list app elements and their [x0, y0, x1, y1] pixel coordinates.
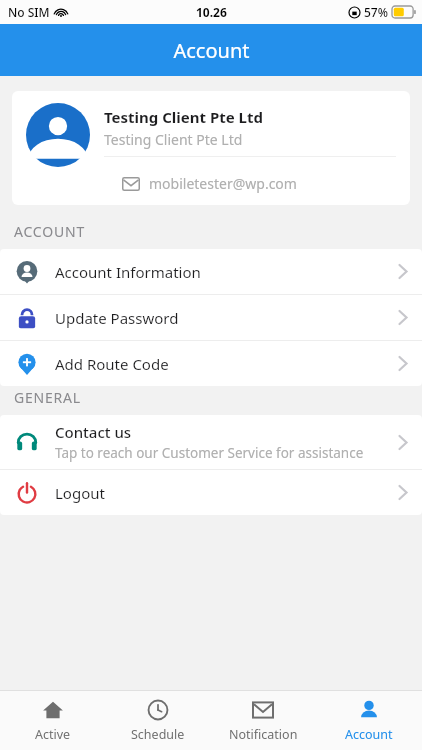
staticText: Testing Client Pte Ltd: [104, 130, 243, 149]
staticText: Logout: [55, 483, 105, 503]
button[interactable]: Active: [0, 691, 105, 750]
staticText: Update Password: [55, 308, 179, 328]
button[interactable]: Account: [316, 691, 422, 750]
staticText: Account: [345, 726, 393, 743]
staticText: ACCOUNT: [14, 222, 85, 241]
staticText: Add Route Code: [55, 354, 169, 374]
staticText: Account Information: [55, 262, 201, 282]
button[interactable]: Testing Client Pte Ltd: [12, 91, 410, 205]
staticText: Testing Client Pte Ltd: [104, 107, 263, 127]
button[interactable]: Account Information: [0, 249, 422, 294]
button[interactable]: Notification: [210, 691, 316, 750]
staticText: 10.26: [196, 4, 227, 20]
staticText: Active: [35, 726, 71, 743]
button[interactable]: Schedule: [105, 691, 210, 750]
button[interactable]: Logout: [0, 470, 422, 515]
staticText: Schedule: [131, 726, 185, 743]
button[interactable]: Contact us: [0, 415, 422, 469]
staticText: Tap to reach our Customer Service for as…: [55, 444, 364, 462]
staticText: Contact us: [55, 422, 132, 442]
staticText: mobiletester@wp.com: [149, 174, 297, 193]
button[interactable]: Update Password: [0, 295, 422, 340]
staticText: No SIM: [8, 4, 50, 20]
staticText: Notification: [229, 726, 298, 743]
staticText: 57%: [364, 4, 388, 20]
staticText: Account: [173, 37, 250, 64]
staticText: GENERAL: [14, 388, 81, 407]
button[interactable]: Add Route Code: [0, 341, 422, 386]
